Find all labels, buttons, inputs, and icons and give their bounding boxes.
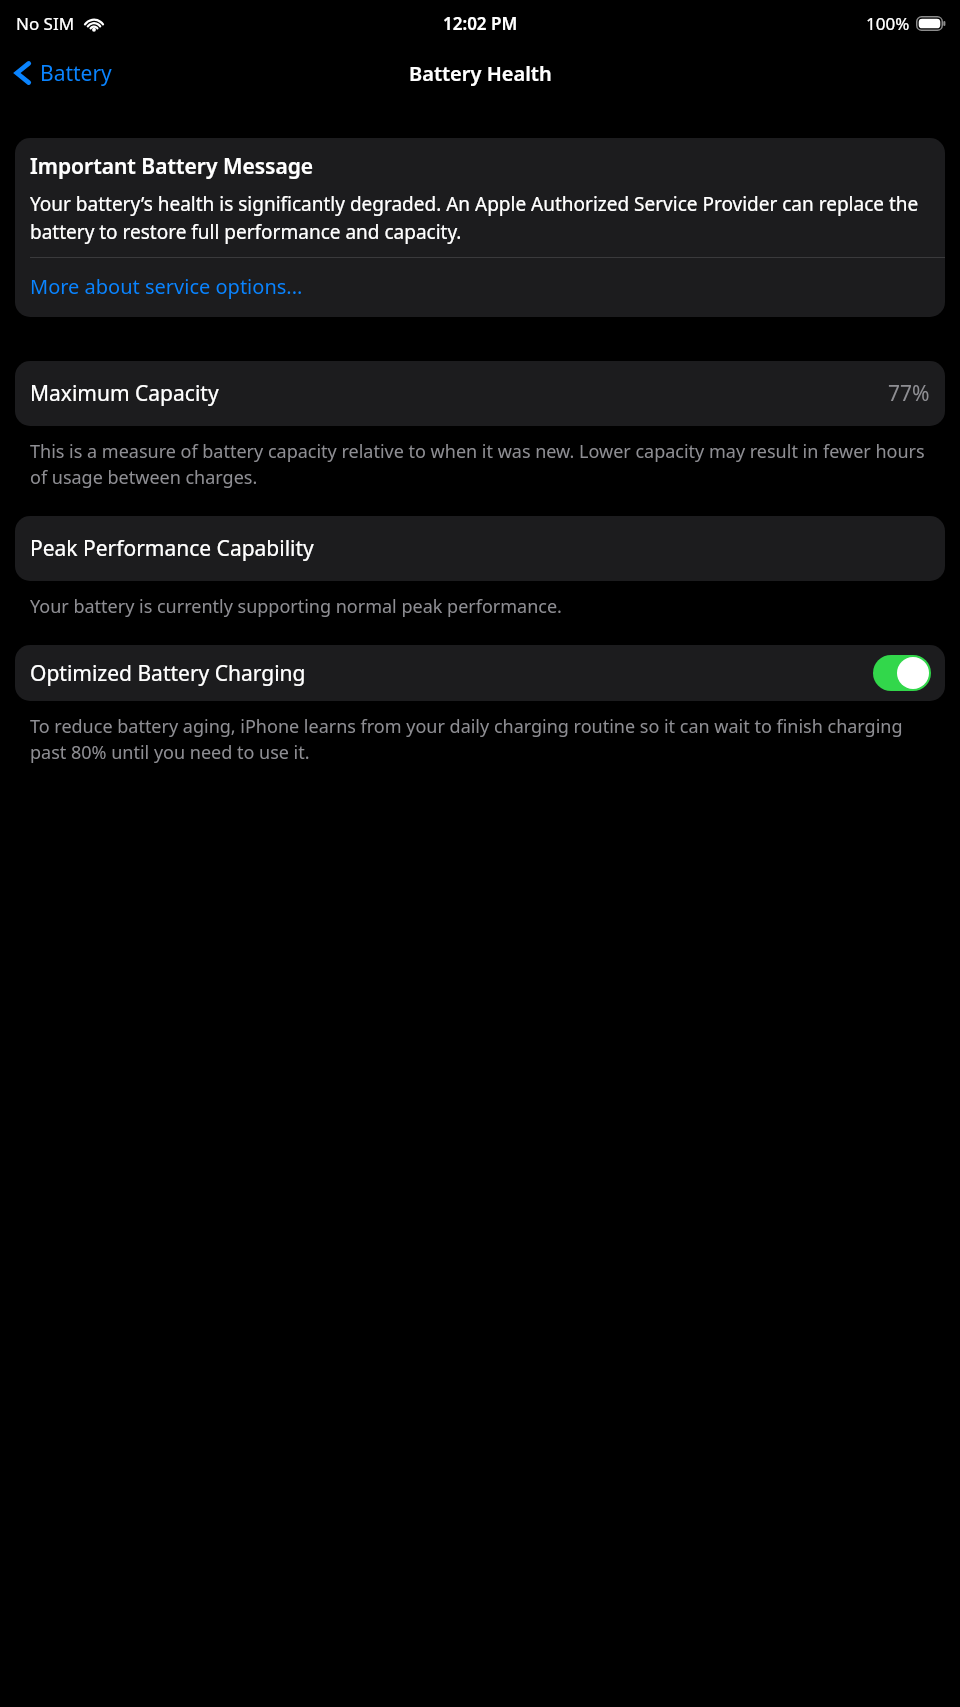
button[interactable]: Peak Performance Capability [15,516,945,581]
button[interactable]: Optimized Battery Charging toggle, on [873,655,931,691]
staticText: 12:02 PM [443,12,518,35]
staticText: More about service options... [30,273,303,300]
staticText: Maximum Capacity [30,379,888,408]
staticText: Battery [40,59,112,88]
staticText: This is a measure of battery capacity re… [30,439,936,490]
staticText: Your battery is currently supporting nor… [30,594,936,619]
staticText: Battery Health [409,60,552,87]
staticText: To reduce battery aging, iPhone learns f… [30,714,936,765]
button[interactable]: Maximum Capacity [15,361,945,426]
staticText: Peak Performance Capability [30,534,314,563]
button[interactable]: More about service options... [15,258,945,317]
staticText: 77% [888,379,930,408]
staticText: Your battery’s health is significantly d… [30,191,930,245]
staticText: 100% [866,12,910,35]
staticText: Optimized Battery Charging [30,659,873,688]
staticText: No SIM [16,12,75,35]
button[interactable]: Battery [0,52,122,94]
staticText: Important Battery Message [30,152,314,181]
